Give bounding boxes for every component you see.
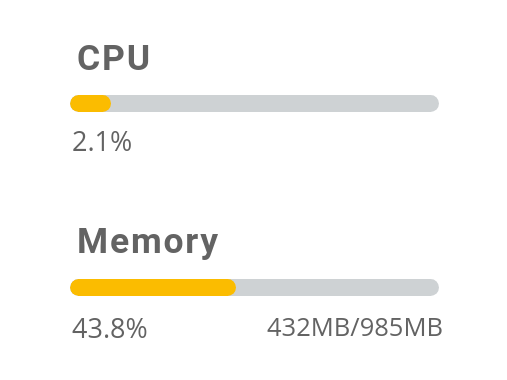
staticText: 432MB/985MB: [267, 309, 443, 344]
staticText: 43.8%: [72, 309, 148, 346]
staticText: 2.1%: [72, 122, 133, 159]
staticText: Memory: [77, 220, 221, 262]
button[interactable]: Memory usage 43.8 percent: [70, 279, 439, 296]
button[interactable]: CPU usage 2.1 percent: [70, 95, 439, 112]
staticText: CPU: [77, 37, 152, 79]
